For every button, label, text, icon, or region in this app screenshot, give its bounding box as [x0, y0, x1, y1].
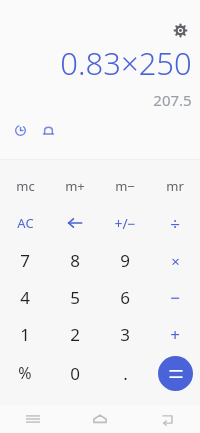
button[interactable]: 8: [50, 242, 100, 279]
staticText: AC: [17, 214, 34, 232]
button[interactable]: m−: [100, 168, 150, 204]
button[interactable]: 2: [50, 316, 100, 353]
staticText: ÷: [170, 212, 180, 235]
staticText: .: [123, 362, 128, 385]
button[interactable]: Converter: [36, 118, 60, 142]
staticText: m−: [115, 177, 135, 195]
staticText: +: [170, 323, 180, 346]
staticText: 0.83×250: [60, 42, 192, 84]
staticText: 8: [70, 249, 80, 272]
staticText: 0: [70, 362, 80, 385]
button[interactable]: 5: [50, 279, 100, 316]
button[interactable]: ÷: [150, 204, 200, 242]
button[interactable]: Home: [66, 405, 133, 433]
button[interactable]: History: [8, 118, 32, 142]
button[interactable]: 4: [0, 279, 50, 316]
button[interactable]: 6: [100, 279, 150, 316]
button[interactable]: mc: [0, 168, 50, 204]
staticText: m+: [65, 177, 85, 195]
button[interactable]: Recent apps: [0, 405, 66, 433]
staticText: 9: [120, 249, 130, 272]
staticText: ×: [171, 251, 180, 271]
staticText: 3: [120, 323, 130, 346]
staticText: +/−: [114, 214, 136, 233]
button[interactable]: 9: [100, 242, 150, 279]
button[interactable]: ×: [150, 242, 200, 279]
staticText: 207.5: [153, 90, 192, 110]
button[interactable]: AC: [0, 204, 50, 242]
staticText: 4: [20, 286, 30, 309]
button[interactable]: Equals: [158, 356, 193, 391]
button[interactable]: Backspace: [50, 204, 100, 242]
staticText: −: [170, 286, 180, 309]
button[interactable]: mr: [150, 168, 200, 204]
staticText: 1: [20, 323, 30, 346]
button[interactable]: 7: [0, 242, 50, 279]
button[interactable]: 3: [100, 316, 150, 353]
staticText: 5: [70, 286, 80, 309]
button[interactable]: +: [150, 316, 200, 353]
staticText: %: [18, 362, 32, 384]
staticText: 6: [120, 286, 130, 309]
button[interactable]: m+: [50, 168, 100, 204]
staticText: 7: [20, 249, 30, 272]
button[interactable]: −: [150, 279, 200, 316]
button[interactable]: +/−: [100, 204, 150, 242]
staticText: 2: [70, 323, 80, 346]
button[interactable]: 0: [50, 353, 100, 393]
staticText: mr: [166, 177, 184, 195]
button[interactable]: Settings: [166, 16, 194, 44]
button[interactable]: .: [100, 353, 150, 393]
button[interactable]: 1: [0, 316, 50, 353]
staticText: mc: [16, 177, 35, 195]
button[interactable]: Back: [133, 405, 200, 433]
button[interactable]: %: [0, 353, 50, 393]
